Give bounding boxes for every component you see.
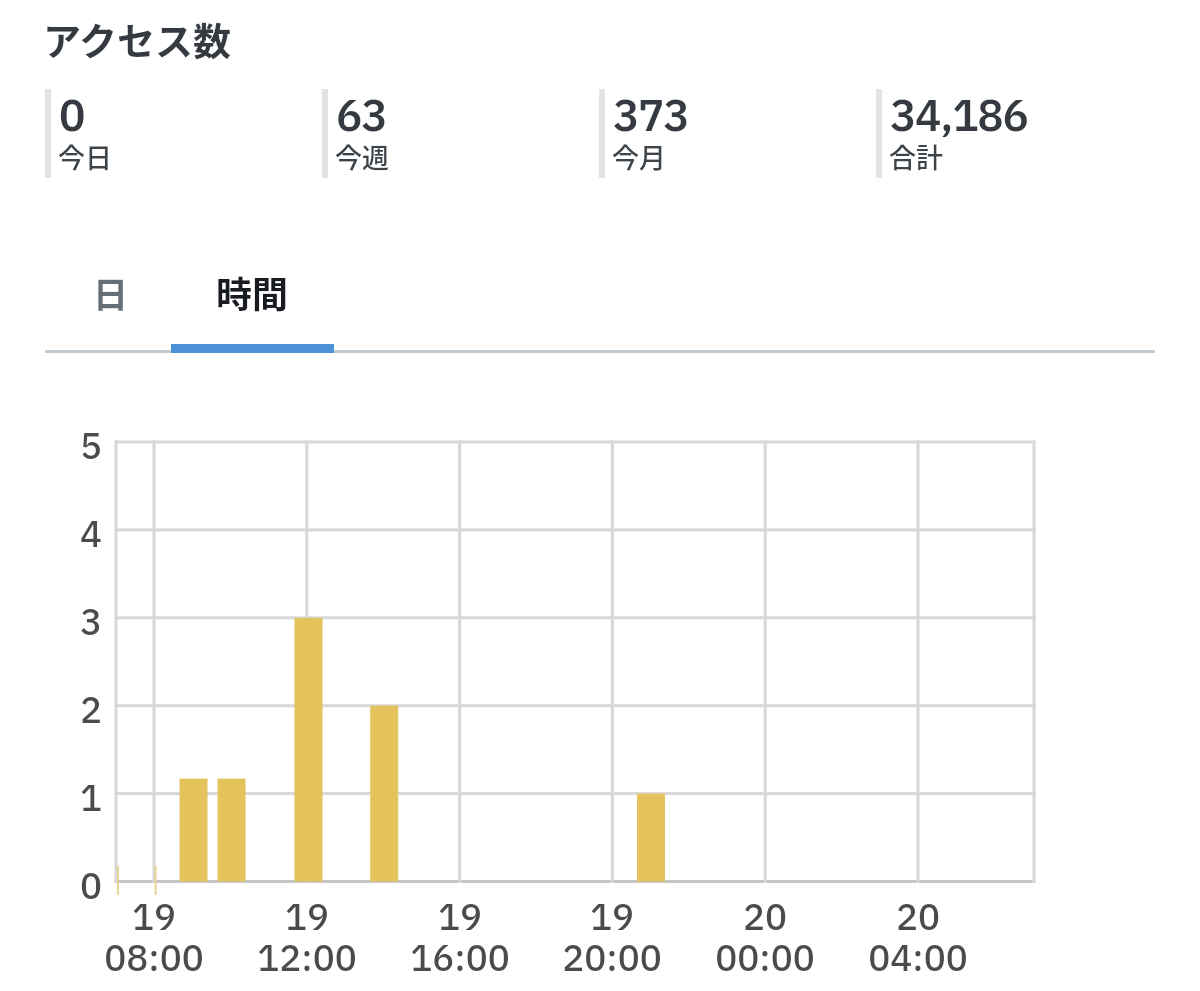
staticText: 19 [532, 893, 692, 945]
button[interactable]: 0 [45, 89, 322, 178]
staticText: 2 [80, 686, 103, 738]
staticText: 今週 [335, 137, 389, 176]
staticText: 4 [80, 510, 103, 562]
staticText: 63 [336, 86, 387, 149]
staticText: 19 [380, 893, 540, 945]
staticText: 0 [80, 862, 103, 914]
staticText: 5 [80, 422, 103, 474]
staticText: 373 [613, 86, 689, 149]
staticText: 20 [838, 893, 998, 945]
staticText: 日 [93, 267, 129, 318]
staticText: 34,186 [890, 86, 1028, 149]
staticText: 今日 [58, 137, 112, 176]
staticText: 時間 [216, 266, 289, 318]
staticText: 3 [80, 598, 103, 650]
staticText: 20 [685, 893, 845, 945]
staticText: 04:00 [838, 934, 998, 986]
staticText: 12:00 [227, 934, 387, 986]
button[interactable]: 時間 [171, 252, 334, 350]
staticText: 16:00 [380, 934, 540, 986]
staticText: 0 [59, 86, 85, 149]
button[interactable]: 日 [50, 252, 171, 350]
button[interactable]: Hourly access chart [45, 400, 1155, 991]
button[interactable]: 373 [599, 89, 876, 178]
staticText: 1 [80, 774, 103, 826]
staticText: アクセス数 [43, 11, 232, 66]
staticText: 20:00 [532, 934, 692, 986]
staticText: 08:00 [74, 934, 234, 986]
button[interactable]: 63 [322, 89, 599, 178]
staticText: 合計 [889, 137, 943, 176]
staticText: 19 [227, 893, 387, 945]
staticText: 19 [74, 893, 234, 945]
staticText: 今月 [612, 137, 666, 176]
staticText: 00:00 [685, 934, 845, 986]
button[interactable]: 34,186 [876, 89, 1155, 178]
